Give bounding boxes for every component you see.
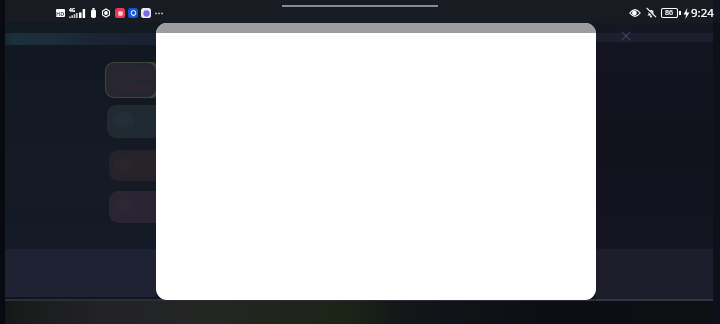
staticText: 86 (665, 8, 674, 18)
staticText: 4G (69, 7, 76, 14)
button[interactable] (109, 150, 157, 181)
staticText: HD (56, 10, 65, 17)
button[interactable] (107, 105, 157, 138)
button[interactable] (156, 23, 596, 300)
button[interactable] (105, 62, 157, 98)
button[interactable]: Close (618, 29, 634, 45)
staticText: 9:24 (691, 5, 714, 21)
button[interactable] (109, 191, 157, 223)
